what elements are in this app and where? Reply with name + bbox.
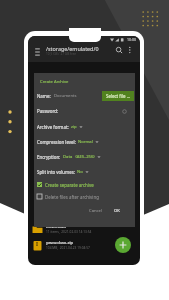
button[interactable]: Create separate archive	[37, 180, 94, 189]
staticText: yawuobao.zip	[46, 240, 74, 246]
staticText: Download	[46, 224, 66, 230]
staticText: Name:	[37, 93, 51, 99]
button[interactable]: OK	[112, 207, 122, 215]
button[interactable]: Search	[114, 45, 124, 55]
staticText: Compression level:	[37, 139, 76, 145]
staticText: Encryption:	[37, 154, 61, 160]
button[interactable]: Delete files after archiving	[37, 192, 99, 201]
staticText: 10,5 GB / 27 GB free	[46, 52, 77, 56]
staticText: Create Archive	[40, 79, 69, 85]
button[interactable]: Open navigation menu	[33, 46, 42, 55]
staticText: 11 items, 2021-02-03 14:13:54	[46, 230, 92, 234]
staticText: Normal	[78, 139, 93, 145]
staticText: Split into volumes:	[37, 169, 75, 175]
button[interactable]: Archive format:	[37, 122, 83, 131]
button[interactable]: Split into volumes:	[37, 167, 89, 176]
button[interactable]: yawuobao.zip	[28, 238, 140, 252]
staticText: /storage/emulated/0	[46, 45, 99, 52]
button[interactable]: Add	[115, 237, 131, 253]
staticText: zip	[71, 124, 77, 130]
staticText: Cancel	[89, 208, 103, 214]
staticText: OK	[114, 208, 120, 214]
staticText: 10:00	[127, 37, 136, 42]
staticText: Password:	[37, 108, 59, 114]
staticText: Create separate archive	[45, 182, 94, 188]
button[interactable]: Download	[28, 222, 140, 236]
button[interactable]: Select file ...	[102, 91, 134, 101]
staticText: Select file ...	[106, 93, 131, 99]
button[interactable]: More options	[125, 45, 135, 55]
button[interactable]: Compression level:	[37, 137, 99, 146]
staticText: No	[77, 169, 83, 175]
staticText: Documents	[54, 93, 77, 99]
button[interactable]: Cancel	[87, 207, 105, 215]
staticText: Data (AES–256)	[63, 154, 95, 160]
button[interactable]: Encryption:	[37, 152, 101, 161]
staticText: Archive format:	[37, 124, 69, 130]
staticText: 104 MB, 2021-04-23 19:04:57	[46, 246, 90, 250]
staticText: Delete files after archiving	[45, 194, 99, 200]
